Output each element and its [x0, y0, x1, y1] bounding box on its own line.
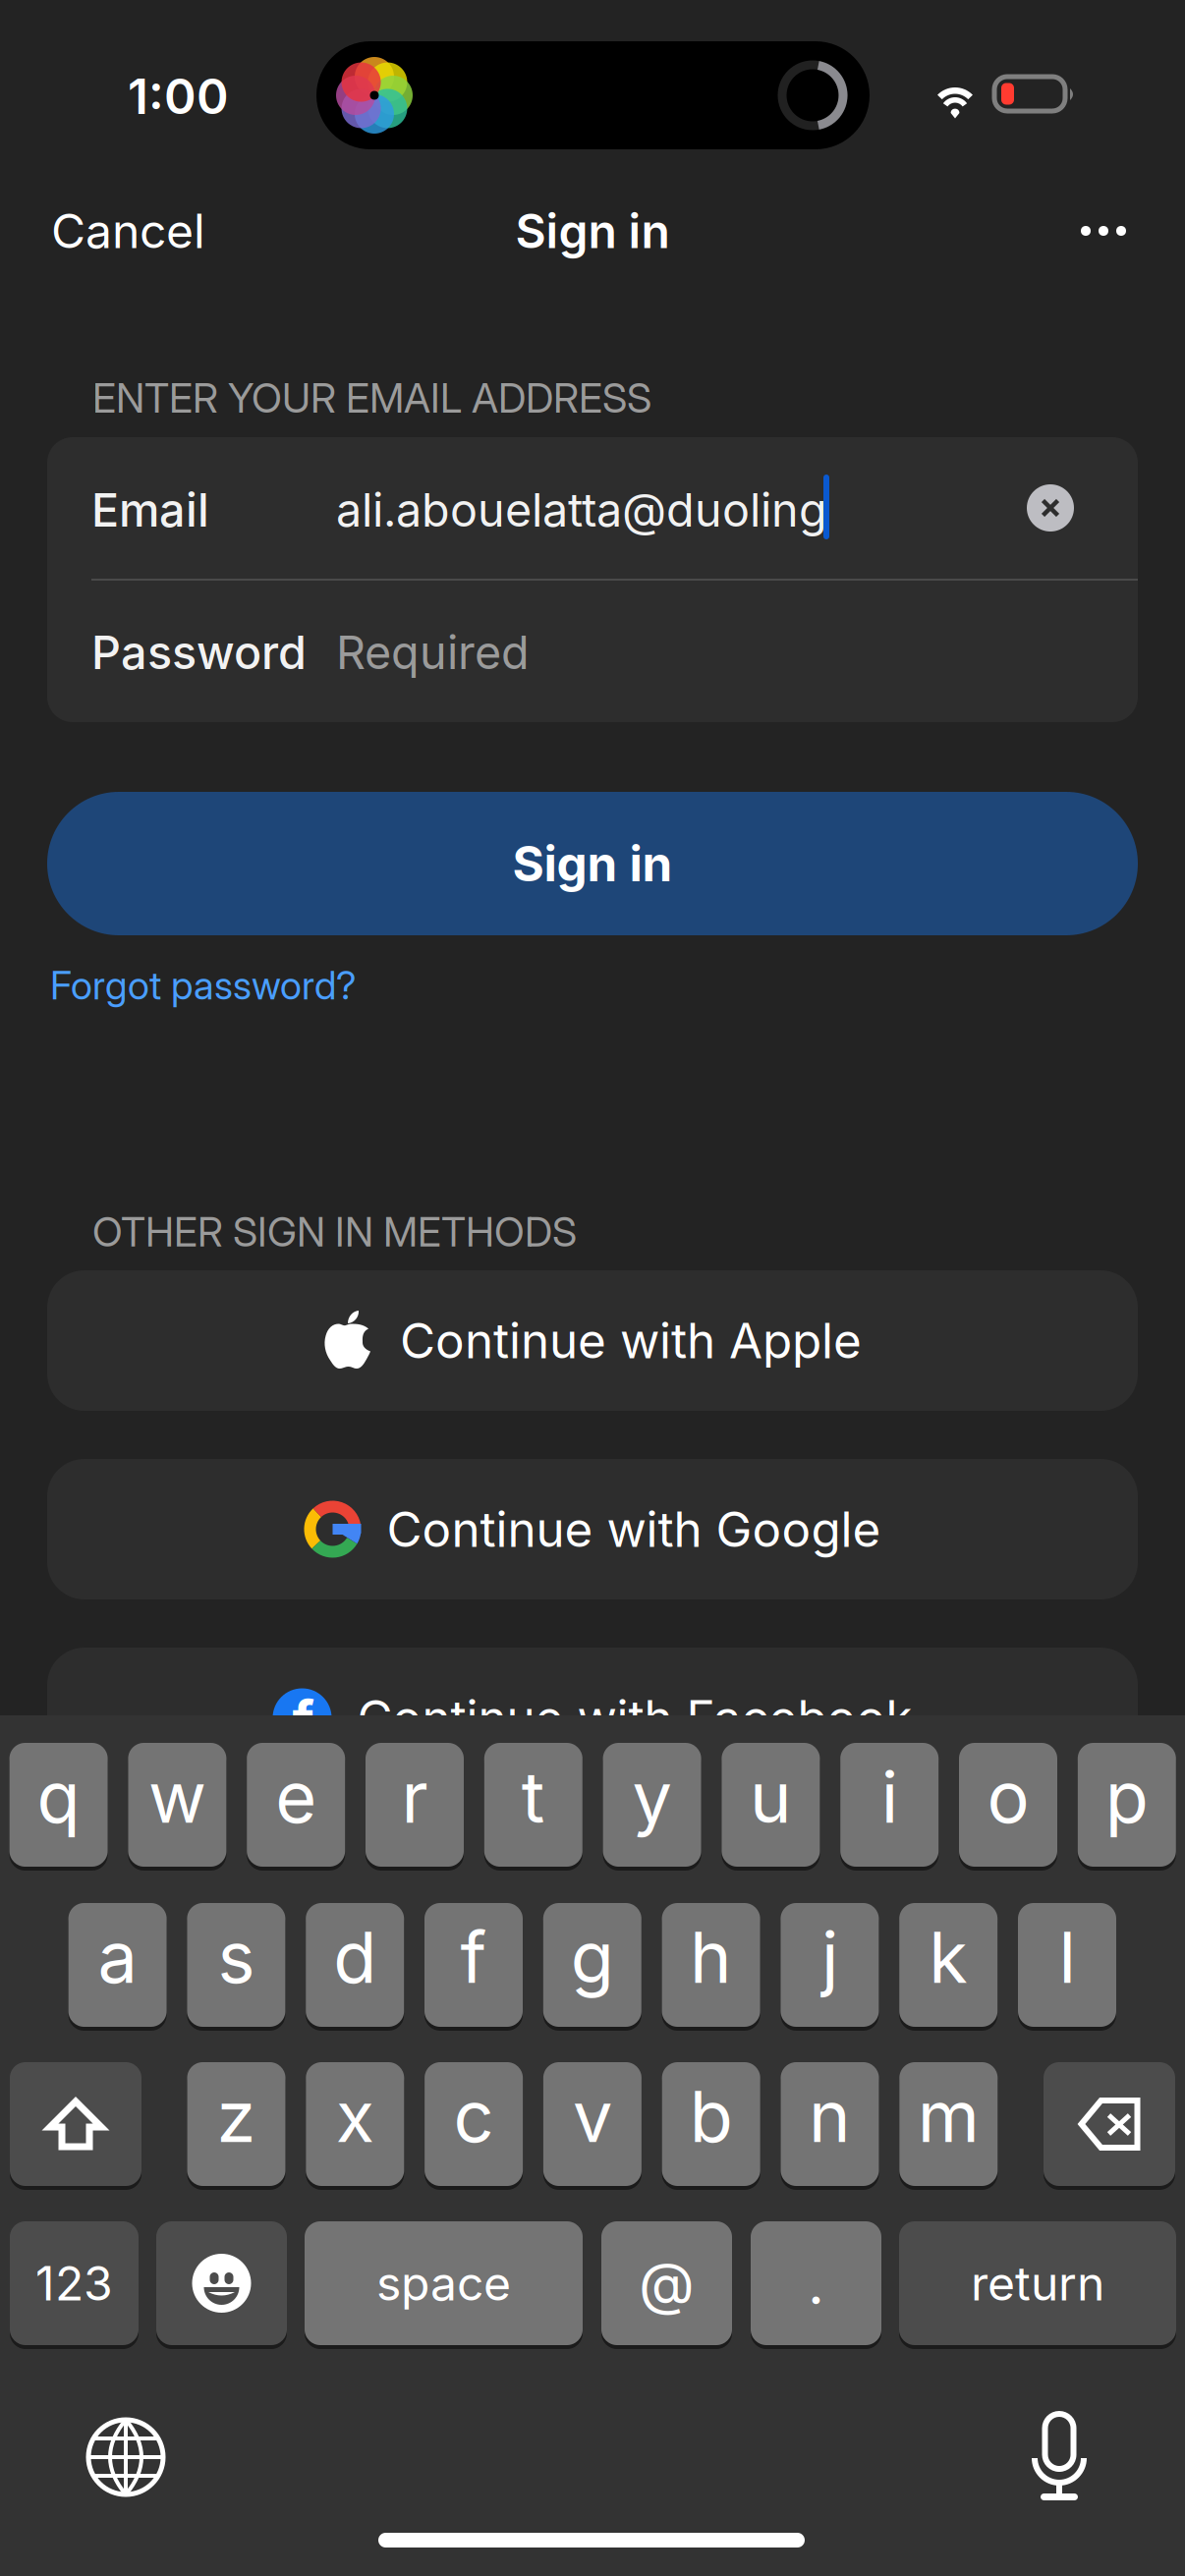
staticText: r: [401, 1754, 428, 1840]
button[interactable]: h: [662, 1901, 760, 2029]
staticText: Password: [91, 625, 307, 680]
staticText: s: [218, 1914, 255, 2000]
button[interactable]: l: [1018, 1901, 1116, 2029]
staticText: p: [1105, 1754, 1148, 1840]
staticText: Sign in: [512, 834, 673, 893]
staticText: OTHER SIGN IN METHODS: [92, 1208, 577, 1256]
button[interactable]: c: [425, 2060, 523, 2188]
staticText: ali.abouelatta@duoling: [336, 482, 827, 538]
staticText: t: [522, 1754, 545, 1840]
button[interactable]: e: [247, 1741, 345, 1869]
staticText: ENTER YOUR EMAIL ADDRESS: [92, 374, 651, 422]
button[interactable]: Sign in: [47, 792, 1138, 935]
button[interactable]: Clear text: [1027, 484, 1074, 532]
staticText: f: [460, 1914, 487, 2000]
staticText: return: [971, 2255, 1104, 2312]
staticText: Continue with Apple: [400, 1311, 862, 1370]
button[interactable]: space: [305, 2219, 583, 2347]
staticText: g: [571, 1914, 614, 2000]
button[interactable]: o: [959, 1741, 1057, 1869]
staticText: x: [336, 2073, 374, 2159]
staticText: Continue with Google: [387, 1500, 881, 1559]
button[interactable]: Delete: [1044, 2060, 1175, 2188]
button[interactable]: Cancel: [33, 189, 250, 273]
staticText: o: [987, 1754, 1029, 1840]
staticText: Sign in: [515, 202, 670, 259]
staticText: c: [454, 2073, 494, 2159]
button[interactable]: f: [424, 1901, 523, 2029]
staticText: y: [632, 1754, 672, 1840]
button[interactable]: .: [751, 2219, 881, 2347]
staticText: 1:00: [128, 67, 229, 126]
button[interactable]: z: [187, 2060, 285, 2188]
button[interactable]: @: [601, 2219, 732, 2347]
button[interactable]: Continue with Google: [47, 1459, 1138, 1599]
staticText: @: [639, 2248, 695, 2318]
button[interactable]: m: [899, 2060, 998, 2188]
staticText: Email: [91, 482, 209, 538]
button[interactable]: b: [662, 2060, 760, 2188]
staticText: 123: [35, 2255, 113, 2312]
staticText: m: [918, 2073, 979, 2159]
button[interactable]: x: [306, 2060, 404, 2188]
staticText: u: [750, 1754, 792, 1840]
staticText: f: [292, 1687, 314, 1754]
button[interactable]: s: [187, 1901, 285, 2029]
staticText: Forgot password?: [50, 962, 357, 1009]
button[interactable]: p: [1078, 1741, 1176, 1869]
staticText: z: [217, 2073, 256, 2159]
button[interactable]: g: [543, 1901, 641, 2029]
button[interactable]: w: [128, 1741, 226, 1869]
staticText: q: [37, 1754, 80, 1840]
button[interactable]: d: [306, 1901, 404, 2029]
button[interactable]: Dictation: [1032, 2414, 1087, 2500]
button[interactable]: Continue with Apple: [47, 1270, 1138, 1411]
button[interactable]: y: [603, 1741, 701, 1869]
button[interactable]: r: [366, 1741, 464, 1869]
staticText: n: [809, 2073, 851, 2159]
button[interactable]: u: [722, 1741, 820, 1869]
staticText: Continue with Facebook: [357, 1689, 912, 1747]
button[interactable]: f: [47, 1648, 1138, 1788]
staticText: j: [821, 1914, 838, 2000]
staticText: .: [808, 2248, 824, 2318]
button[interactable]: i: [840, 1741, 939, 1869]
staticText: e: [275, 1754, 317, 1840]
button[interactable]: a: [68, 1901, 167, 2029]
staticText: h: [690, 1914, 732, 2000]
staticText: b: [689, 2073, 733, 2159]
button[interactable]: n: [781, 2060, 879, 2188]
button[interactable]: q: [9, 1741, 108, 1869]
button[interactable]: Forgot password?: [35, 951, 487, 1020]
button[interactable]: Emoji: [156, 2219, 287, 2347]
staticText: l: [1059, 1914, 1075, 2000]
button[interactable]: return: [899, 2219, 1176, 2347]
button[interactable]: v: [543, 2060, 642, 2188]
button[interactable]: Shift: [10, 2060, 141, 2188]
staticText: space: [376, 2255, 511, 2312]
staticText: v: [573, 2073, 612, 2159]
button[interactable]: k: [899, 1901, 998, 2029]
button[interactable]: More options: [1002, 189, 1150, 273]
button[interactable]: Next keyboard: [86, 2418, 165, 2496]
staticText: Cancel: [51, 202, 205, 259]
staticText: i: [881, 1754, 898, 1840]
staticText: a: [98, 1914, 137, 2000]
staticText: k: [929, 1914, 968, 2000]
staticText: Required: [336, 625, 530, 680]
button[interactable]: j: [781, 1901, 879, 2029]
button[interactable]: t: [484, 1741, 582, 1869]
staticText: w: [148, 1754, 206, 1840]
button[interactable]: 123: [10, 2219, 139, 2347]
staticText: d: [333, 1914, 377, 2000]
